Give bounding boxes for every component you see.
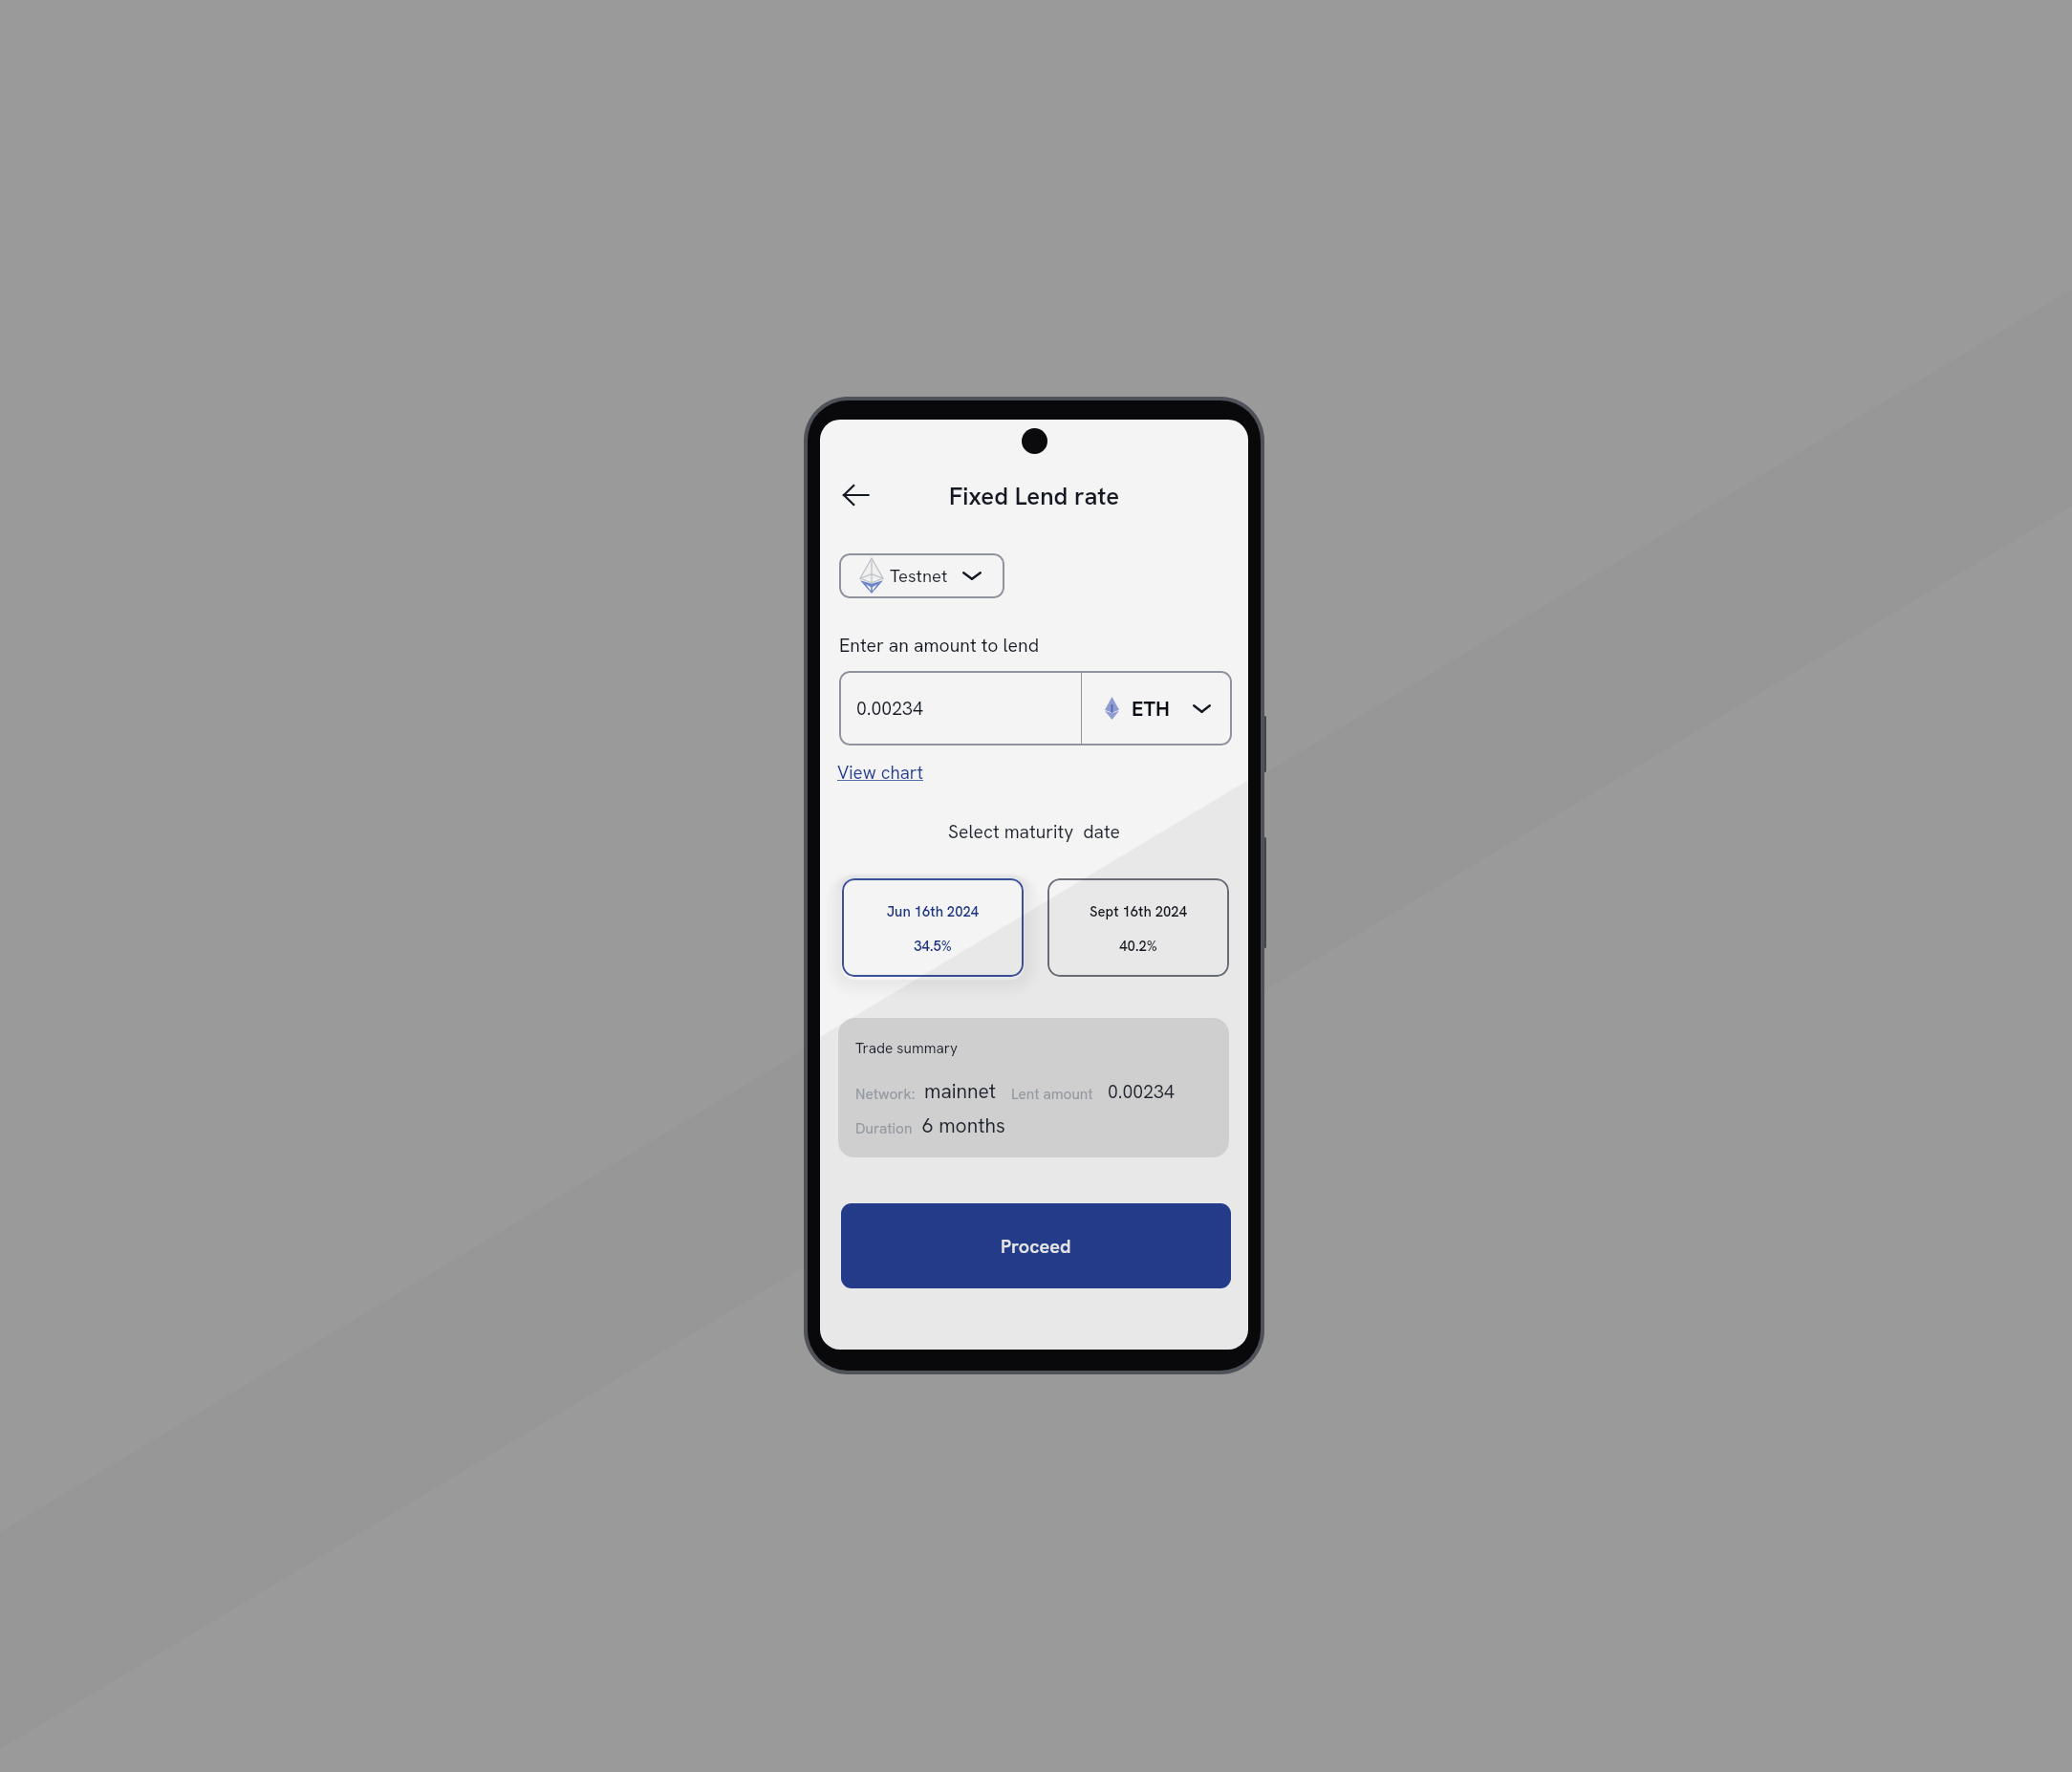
button[interactable]: Sept 16th 2024 [1047, 878, 1229, 977]
staticText: ETH [1132, 695, 1170, 722]
staticText: Enter an amount to lend [839, 634, 1040, 658]
button[interactable]: View chart [837, 761, 923, 784]
staticText: Duration [855, 1119, 913, 1138]
staticText: mainnet [924, 1078, 996, 1104]
button[interactable]: ETH [1082, 671, 1232, 746]
staticText: Sept 16th 2024 [1047, 902, 1229, 920]
button[interactable]: Jun 16th 2024 [842, 878, 1024, 977]
staticText: Fixed Lend rate [820, 480, 1248, 511]
button[interactable]: Testnet [839, 553, 1004, 598]
staticText: 0.00234 [1108, 1080, 1175, 1104]
staticText: Select maturity date [820, 820, 1248, 844]
staticText: 0.00234 [856, 697, 923, 721]
staticText: Lent amount [1011, 1085, 1093, 1104]
staticText: Jun 16th 2024 [842, 902, 1024, 920]
staticText: Trade summary [855, 1039, 959, 1058]
button[interactable]: Back [831, 473, 880, 517]
button[interactable]: Proceed [841, 1203, 1231, 1288]
staticText: 34.5% [842, 937, 1024, 955]
staticText: Proceed [1001, 1234, 1071, 1259]
staticText: 6 months [922, 1113, 1005, 1138]
staticText: 40.2% [1047, 937, 1229, 955]
button[interactable]: 0.00234 [839, 671, 1081, 746]
staticText: Testnet [890, 565, 948, 588]
staticText: Network: [855, 1085, 916, 1104]
